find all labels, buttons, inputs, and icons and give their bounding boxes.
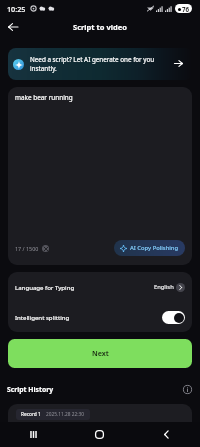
staticText: 17 / 1500 [15,245,39,252]
staticText: 76 [182,5,190,13]
button[interactable]: Information [182,384,193,395]
button[interactable]: Clear text [42,245,49,252]
staticText: Script to video [73,22,127,32]
button[interactable]: Back [4,18,22,36]
button[interactable]: Need a script? Let AI generate one for y… [8,48,192,80]
button[interactable]: Home [66,422,133,447]
button[interactable]: Language for Typing [8,272,192,302]
staticText: 2025.11.28 22:30 [46,411,85,418]
button[interactable]: Next [8,339,192,368]
staticText: AI Copy Polishing [130,244,179,252]
staticText: 10:25 [7,4,26,14]
button[interactable]: Recent apps [0,422,66,447]
button[interactable]: Record 1 [8,404,192,444]
staticText: Intelligent splitting [15,313,70,321]
staticText: Script History [7,385,54,394]
staticText: Need a script? Let AI generate one for y… [30,55,170,73]
button[interactable]: Intelligent splitting [8,302,192,332]
staticText: Record 1 [21,411,41,418]
staticText: make bear running [15,93,73,102]
button[interactable]: Back [133,422,200,447]
staticText: Next [92,349,109,359]
button[interactable]: AI Copy Polishing [114,240,185,256]
staticText: English [154,283,174,291]
staticText: Language for Typing [15,283,75,291]
button[interactable]: Intelligent splitting toggle [162,311,185,324]
